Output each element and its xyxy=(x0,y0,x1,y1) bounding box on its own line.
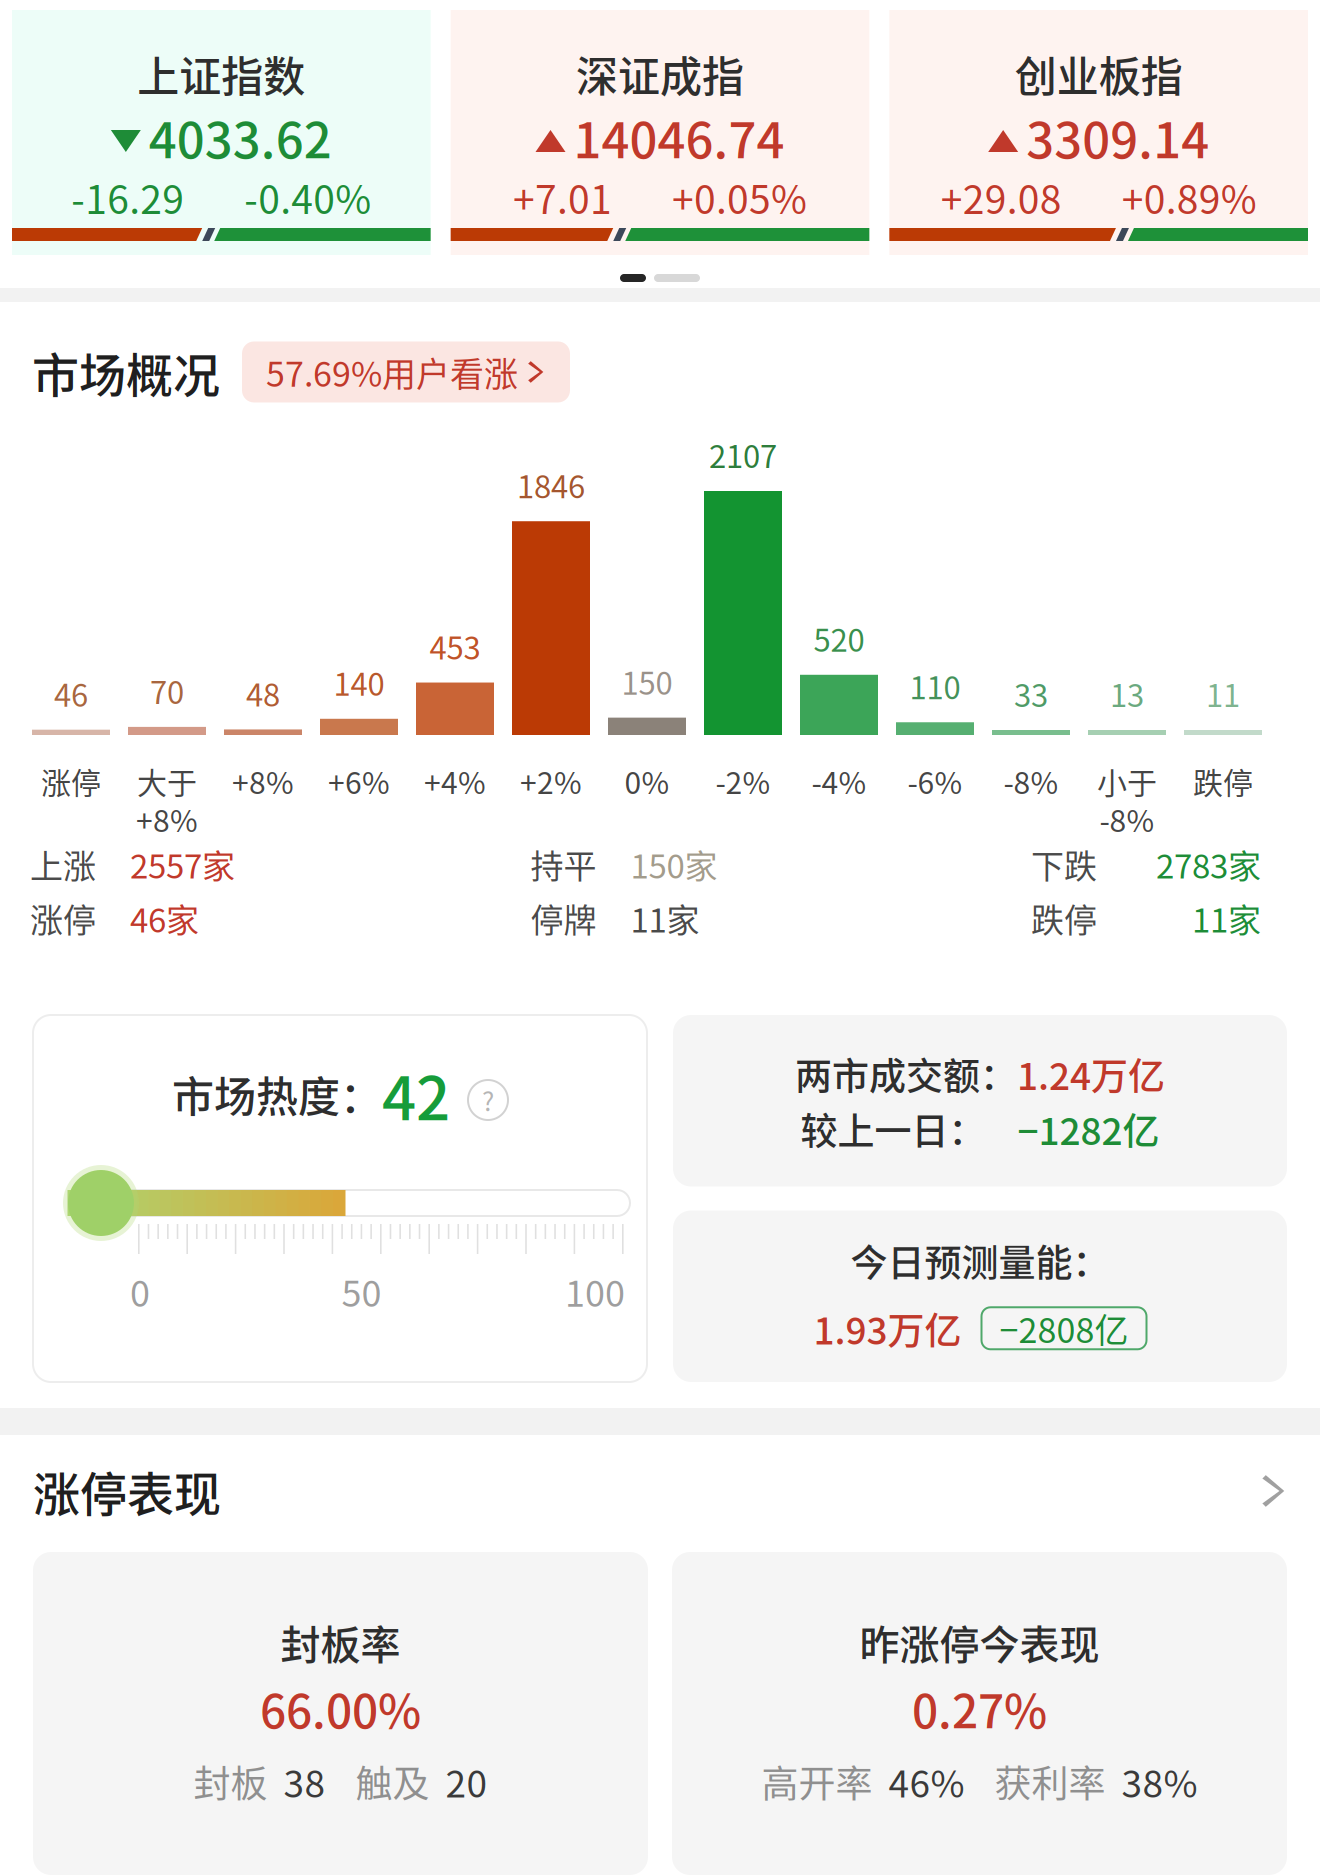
staticText: 150 xyxy=(621,659,672,704)
staticText: +2% xyxy=(520,759,582,803)
staticText: -0.40% xyxy=(244,169,371,225)
staticText: -4% xyxy=(811,759,866,803)
staticText: -6% xyxy=(907,759,962,803)
staticText: 1.24万亿 xyxy=(1017,1047,1165,1101)
staticText: +4% xyxy=(424,759,486,803)
staticText: 2783家 xyxy=(1156,840,1261,888)
staticText: 获利率 xyxy=(994,1755,1105,1808)
staticText: +6% xyxy=(328,759,390,803)
staticText: 13 xyxy=(1110,671,1144,716)
staticText: 70 xyxy=(150,668,184,713)
button[interactable]: 涨停表现 xyxy=(0,1435,1320,1525)
staticText: 3309.14 xyxy=(1026,101,1209,172)
staticText: 33 xyxy=(1014,671,1048,716)
staticText: 0 xyxy=(130,1265,150,1317)
staticText: 停牌 xyxy=(530,894,596,942)
staticText: 42 xyxy=(382,1051,450,1137)
staticText: −2808亿 xyxy=(999,1304,1128,1353)
staticText: -8% xyxy=(1003,759,1058,803)
staticText: +0.05% xyxy=(672,169,807,225)
staticText: 跌停 xyxy=(1193,759,1253,803)
staticText: 上证指数 xyxy=(137,43,305,104)
staticText: 2107 xyxy=(709,432,777,477)
staticText: 创业板指 xyxy=(1015,43,1183,104)
staticText: −1282亿 xyxy=(985,1102,1159,1156)
staticText: 46家 xyxy=(130,894,199,942)
staticText: 46 xyxy=(54,671,88,716)
staticText: +8% xyxy=(232,759,294,803)
staticText: 11家 xyxy=(1192,894,1261,942)
staticText: 48 xyxy=(246,671,280,715)
staticText: 20 xyxy=(445,1755,487,1808)
staticText: 封板 xyxy=(193,1755,267,1808)
staticText: 涨停 xyxy=(30,894,96,942)
staticText: 0.27% xyxy=(912,1675,1047,1742)
staticText: -16.29 xyxy=(71,169,184,225)
staticText: 上涨 xyxy=(30,840,96,888)
staticText: 453 xyxy=(429,624,480,669)
staticText: 下跌 xyxy=(1031,840,1097,888)
staticText: 小于 xyxy=(1097,759,1157,803)
staticText: 50 xyxy=(341,1265,381,1317)
staticText: 大于 xyxy=(137,759,197,803)
staticText: 100 xyxy=(565,1265,625,1317)
staticText: 市场热度： xyxy=(172,1064,382,1124)
staticText: 38 xyxy=(283,1755,325,1808)
staticText: 1.93万亿 xyxy=(813,1301,961,1355)
button[interactable]: 创业板指 xyxy=(889,10,1308,255)
button[interactable]: 深证成指 xyxy=(451,10,869,255)
staticText: 150家 xyxy=(630,840,717,888)
staticText: 涨停 xyxy=(41,759,101,803)
staticText: 66.00% xyxy=(260,1675,421,1742)
staticText: +7.01 xyxy=(513,169,612,225)
staticText: 14046.74 xyxy=(573,101,784,172)
staticText: 深证成指 xyxy=(576,43,744,104)
button[interactable]: 上证指数 xyxy=(12,10,431,255)
staticText: 140 xyxy=(333,660,384,705)
staticText: 2557家 xyxy=(130,840,235,888)
staticText: 两市成交额： xyxy=(795,1047,1017,1101)
staticText: 持平 xyxy=(530,840,596,888)
staticText: 较上一日： xyxy=(800,1102,985,1156)
staticText: 跌停 xyxy=(1031,894,1097,942)
button[interactable]: 57.69%用户看涨 xyxy=(242,341,570,402)
staticText: +29.08 xyxy=(941,169,1062,225)
staticText: -2% xyxy=(715,759,770,803)
staticText: 11 xyxy=(1206,671,1240,716)
staticText: 触及 xyxy=(355,1755,429,1808)
staticText: 昨涨停今表现 xyxy=(859,1613,1099,1671)
staticText: 11家 xyxy=(630,894,699,942)
staticText: 1846 xyxy=(517,462,585,507)
staticText: 520 xyxy=(813,616,864,661)
staticText: 38% xyxy=(1121,1755,1197,1808)
staticText: -8% xyxy=(1099,797,1154,841)
staticText: 市场概况 xyxy=(32,338,220,406)
staticText: +0.89% xyxy=(1122,169,1257,225)
staticText: 高开率 xyxy=(761,1755,872,1808)
staticText: +8% xyxy=(136,797,198,841)
staticText: 今日预测量能： xyxy=(850,1234,1109,1287)
staticText: 110 xyxy=(909,663,960,708)
staticText: 涨停表现 xyxy=(33,1457,221,1525)
staticText: 0% xyxy=(624,759,669,803)
staticText: 封板率 xyxy=(280,1613,400,1671)
staticText: ? xyxy=(482,1081,494,1119)
staticText: 46% xyxy=(888,1755,964,1808)
staticText: 4033.62 xyxy=(149,101,332,172)
staticText: 57.69%用户看涨 xyxy=(266,347,518,397)
